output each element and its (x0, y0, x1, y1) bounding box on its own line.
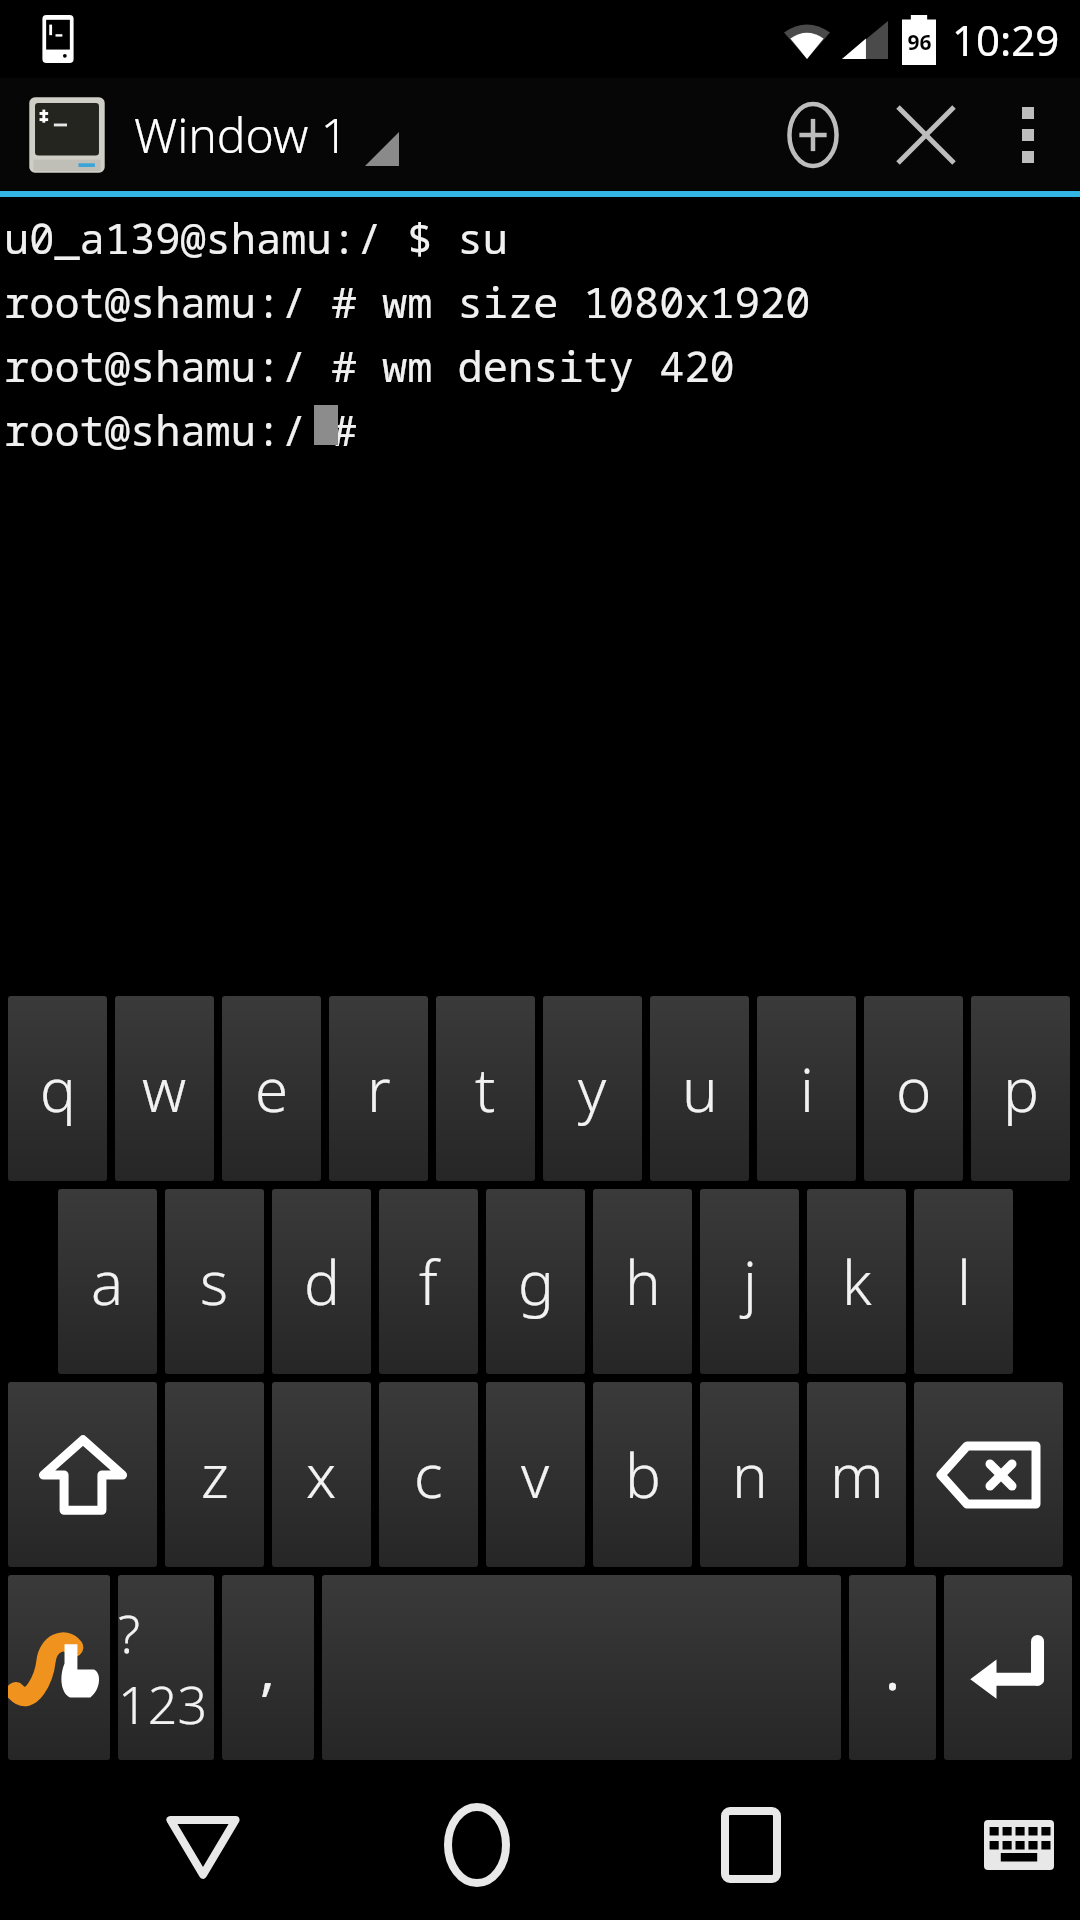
button[interactable]: e (222, 996, 321, 1181)
staticText: n (732, 1434, 768, 1516)
staticText: h (625, 1241, 661, 1323)
staticText: s (200, 1241, 229, 1323)
staticText: f (419, 1241, 438, 1323)
button[interactable]: k (807, 1189, 906, 1374)
button[interactable]: l (914, 1189, 1013, 1374)
button[interactable]: Backspace (914, 1382, 1063, 1567)
button[interactable]: z (165, 1382, 264, 1567)
staticText: 96 (907, 28, 932, 57)
staticText: t (475, 1048, 496, 1130)
button[interactable]: , (222, 1575, 314, 1760)
staticText: root@shamu:/ # wm size 1080x1920 (4, 273, 811, 330)
button[interactable]: . (849, 1575, 936, 1760)
button[interactable]: p (971, 996, 1070, 1181)
button[interactable]: v (486, 1382, 585, 1567)
staticText: 10:29 (952, 11, 1060, 68)
staticText: z (201, 1434, 229, 1516)
button[interactable]: w (115, 996, 214, 1181)
staticText: p (1003, 1048, 1039, 1130)
button[interactable]: h (593, 1189, 692, 1374)
button[interactable]: Shift (8, 1382, 157, 1567)
staticText: ?123 (118, 1597, 214, 1739)
staticText: u0_a139@shamu:/ $ su (4, 209, 509, 266)
staticText: Window 1 (134, 102, 349, 167)
staticText: x (306, 1434, 337, 1516)
button[interactable]: u (650, 996, 749, 1181)
button[interactable]: d (272, 1189, 371, 1374)
button[interactable]: Home (375, 1770, 578, 1920)
staticText: d (304, 1241, 340, 1323)
button[interactable]: i (757, 996, 856, 1181)
button[interactable]: t (436, 996, 535, 1181)
button[interactable]: f (379, 1189, 478, 1374)
button[interactable]: g (486, 1189, 585, 1374)
button[interactable]: More options (982, 78, 1074, 191)
button[interactable]: Enter (944, 1575, 1072, 1760)
staticText: y (578, 1048, 607, 1130)
staticText: o (896, 1048, 932, 1130)
button[interactable]: New window (756, 78, 869, 191)
button[interactable]: y (543, 996, 642, 1181)
staticText: w (142, 1048, 187, 1130)
button[interactable]: j (700, 1189, 799, 1374)
staticText: g (518, 1241, 554, 1323)
staticText: q (40, 1048, 76, 1130)
button[interactable]: o (864, 996, 963, 1181)
button[interactable]: Switch input method (964, 1770, 1074, 1920)
staticText: root@shamu:/ # (4, 401, 383, 458)
button[interactable]: a (58, 1189, 157, 1374)
button[interactable]: Space (322, 1575, 841, 1760)
staticText: i (800, 1048, 814, 1130)
staticText: r (367, 1048, 391, 1130)
staticText: c (414, 1434, 443, 1516)
staticText: l (957, 1241, 971, 1323)
staticText: k (842, 1241, 872, 1323)
button[interactable]: r (329, 996, 428, 1181)
button[interactable]: Swype input method (8, 1575, 110, 1760)
button[interactable]: c (379, 1382, 478, 1567)
button[interactable]: ?123 (118, 1575, 214, 1760)
staticText: b (625, 1434, 661, 1516)
staticText: . (885, 1630, 901, 1706)
staticText: e (255, 1048, 289, 1130)
button[interactable]: Back (101, 1770, 304, 1920)
button[interactable]: m (807, 1382, 906, 1567)
staticText: , (260, 1630, 276, 1706)
button[interactable]: Recent apps (649, 1770, 852, 1920)
button[interactable]: q (8, 996, 107, 1181)
button[interactable]: s (165, 1189, 264, 1374)
staticText: u (682, 1048, 718, 1130)
button[interactable]: x (272, 1382, 371, 1567)
button[interactable]: Window 1 (0, 78, 756, 191)
staticText: a (91, 1241, 124, 1323)
staticText: v (521, 1434, 550, 1516)
staticText: j (743, 1241, 757, 1323)
button[interactable]: n (700, 1382, 799, 1567)
button[interactable]: b (593, 1382, 692, 1567)
staticText: root@shamu:/ # wm density 420 (4, 337, 735, 394)
staticText: m (830, 1434, 884, 1516)
button[interactable]: Close window (869, 78, 982, 191)
